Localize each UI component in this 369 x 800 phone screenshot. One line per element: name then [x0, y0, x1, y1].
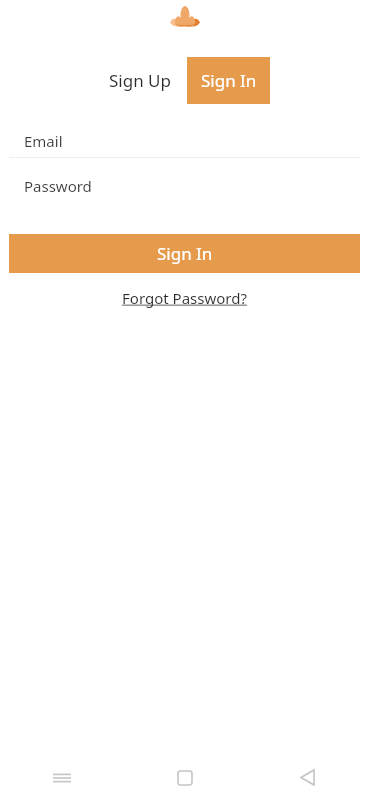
staticText: Email [24, 131, 63, 151]
button[interactable]: Forgot Password? [116, 285, 253, 311]
button[interactable]: Sign Up [99, 55, 181, 106]
button[interactable]: Password [0, 158, 369, 214]
button[interactable]: Email [0, 124, 369, 157]
button[interactable]: Sign In [9, 234, 360, 273]
button[interactable]: Back [246, 755, 369, 800]
button[interactable]: Home [123, 755, 246, 800]
button[interactable]: Sign In [187, 57, 270, 104]
staticText: Sign Up [109, 69, 171, 92]
button[interactable]: Recent apps [0, 755, 123, 800]
staticText: Sign In [157, 242, 213, 265]
other: Lotus logo [169, 6, 201, 28]
staticText: Forgot Password? [122, 288, 247, 308]
staticText: Sign In [201, 69, 257, 92]
staticText: Password [24, 176, 92, 196]
